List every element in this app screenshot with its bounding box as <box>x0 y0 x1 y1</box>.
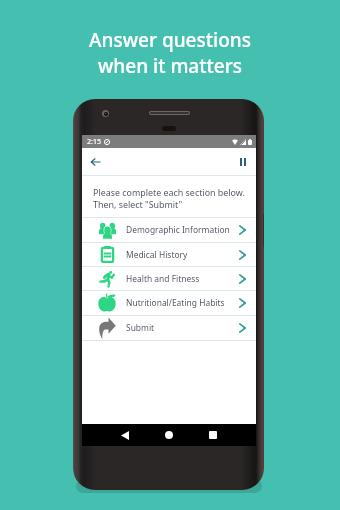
button[interactable]: Demographic Information <box>82 218 256 242</box>
staticText: Health and Fitness <box>126 273 200 285</box>
staticText: Medical History <box>126 249 188 261</box>
staticText: Nutritional/Eating Habits <box>126 297 225 309</box>
button[interactable]: Nutritional/Eating Habits <box>82 291 256 315</box>
staticText: Demographic Information <box>126 224 230 236</box>
staticText: Please complete each section below. <box>93 186 245 198</box>
staticText: Then, select "Submit" <box>93 198 183 210</box>
button[interactable]: Home <box>159 425 179 445</box>
staticText: Answer questions <box>89 27 251 53</box>
button[interactable]: Back <box>85 151 106 172</box>
button[interactable]: Health and Fitness <box>82 267 256 290</box>
button[interactable]: Medical History <box>82 243 256 266</box>
staticText: 2:15 <box>87 137 101 147</box>
button[interactable]: Submit <box>82 316 256 340</box>
staticText: Submit <box>126 322 155 334</box>
button[interactable]: Pause <box>232 151 253 172</box>
button[interactable]: Recent apps <box>203 425 223 445</box>
staticText: when it matters <box>98 53 242 79</box>
button[interactable]: Back <box>115 425 135 445</box>
